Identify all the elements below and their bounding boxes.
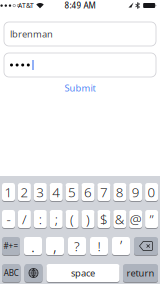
staticText: 4 [52,183,60,201]
button[interactable]: 9 [129,182,142,201]
staticText: . [31,235,35,257]
button[interactable]: 5 [66,182,79,201]
button[interactable]: 3 [34,182,47,201]
staticText: $ [100,210,108,228]
staticText: 8:49 AM [64,0,95,11]
button[interactable]: Delete [134,236,158,255]
staticText: 2 [20,183,28,201]
button[interactable]: ” [145,209,158,228]
button[interactable]: ? [68,236,86,255]
staticText: 7 [100,183,108,201]
button[interactable]: return [123,263,158,282]
staticText: 0 [148,183,156,201]
staticText: 6 [84,183,92,201]
staticText: space [71,267,95,279]
button[interactable]: 4 [50,182,63,201]
button[interactable]: ; [50,209,63,228]
staticText: ’ [120,236,122,256]
staticText: ; [55,210,58,228]
staticText: 1 [4,183,12,201]
staticText: & [115,210,125,228]
staticText: ? [74,237,80,255]
staticText: #+= [3,241,18,251]
button[interactable]: - [2,209,15,228]
staticText: lbrenman [10,28,53,40]
button[interactable]: . [24,236,42,255]
button[interactable]: 6 [81,182,94,201]
button[interactable]: $ [97,209,110,228]
button[interactable]: #+= [2,236,20,255]
button[interactable]: 1 [2,182,15,201]
staticText: , [53,235,57,257]
button[interactable]: lbrenman [4,22,156,46]
button[interactable]: ! [90,236,108,255]
staticText: Submit [64,82,95,94]
button[interactable]: ( [66,209,79,228]
staticText: 9 [132,183,140,201]
button[interactable]: & [113,209,126,228]
staticText: : [39,210,42,228]
staticText: ” [150,210,154,228]
staticText: 8 [116,183,124,201]
staticText: AT&T [18,1,34,10]
staticText: @ [130,210,142,228]
button[interactable]: : [34,209,47,228]
staticText: 5 [68,183,76,201]
button[interactable]: 0 [145,182,158,201]
staticText: return [126,267,154,279]
button[interactable]: ) [81,209,94,228]
staticText: ) [86,210,90,228]
button[interactable]: Submit [50,81,110,95]
staticText: ! [97,237,100,255]
button[interactable]: , [46,236,64,255]
staticText: - [6,210,10,228]
button[interactable]: ABC [2,263,20,282]
button[interactable]: / [18,209,31,228]
staticText: / [22,210,27,228]
staticText: ( [70,210,74,228]
staticText: ABC [4,268,19,278]
button[interactable]: 2 [18,182,31,201]
button[interactable]: Password [4,53,156,77]
button[interactable]: @ [129,209,142,228]
button[interactable]: space [46,263,119,282]
button[interactable]: ’ [112,236,130,255]
staticText: 3 [36,183,44,201]
button[interactable]: 7 [97,182,110,201]
button[interactable]: 8 [113,182,126,201]
button[interactable]: Next keyboard [24,263,42,282]
